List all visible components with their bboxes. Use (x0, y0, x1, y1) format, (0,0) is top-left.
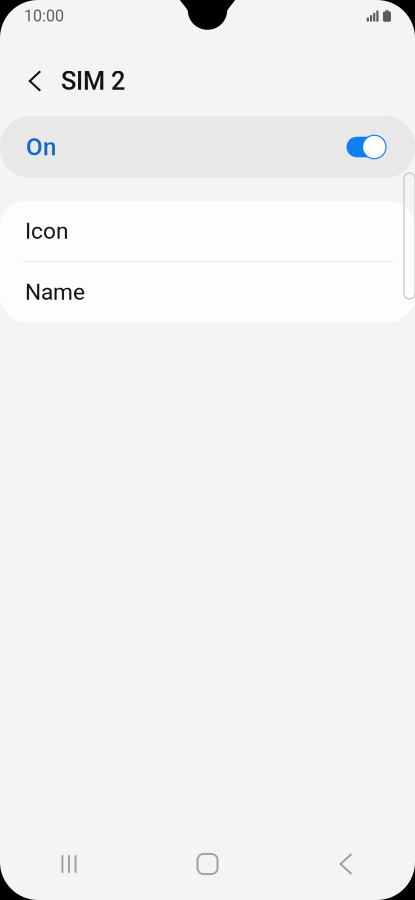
button[interactable]: Home (138, 839, 277, 889)
button[interactable]: On (0, 116, 415, 178)
button[interactable]: Icon (0, 201, 415, 261)
staticText: SIM 2 (61, 66, 125, 95)
button[interactable]: Recents (0, 839, 138, 889)
staticText: Name (25, 279, 85, 305)
staticText: On (26, 133, 56, 161)
button[interactable]: Back (277, 839, 415, 889)
staticText: 10:00 (24, 7, 64, 25)
button[interactable]: Back (15, 58, 54, 104)
staticText: Icon (25, 218, 69, 244)
button[interactable]: Name (0, 262, 415, 322)
